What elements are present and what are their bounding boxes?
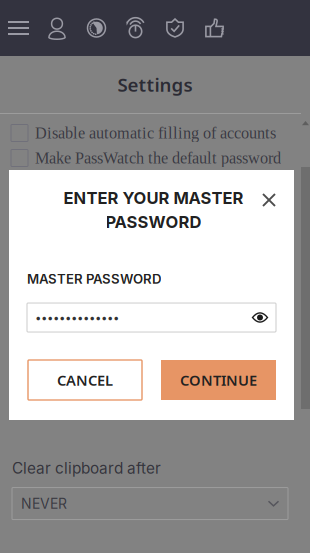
staticText: Clear clipboard after xyxy=(12,459,161,478)
button[interactable]: Security xyxy=(155,0,195,56)
staticText: CONTINUE xyxy=(180,370,257,390)
button[interactable]: Menu xyxy=(0,0,37,56)
staticText: PASSWORD xyxy=(105,212,201,232)
staticText: CANCEL xyxy=(57,370,113,390)
staticText: ENTER YOUR MASTER xyxy=(63,188,243,208)
staticText: MASTER PASSWORD xyxy=(27,271,162,287)
button[interactable]: Password strength xyxy=(77,0,116,56)
staticText: Make PassWatch the default password xyxy=(35,149,281,167)
staticText: •••••••••••••• xyxy=(35,311,119,324)
button[interactable]: CANCEL xyxy=(28,360,142,400)
button[interactable]: CONTINUE xyxy=(161,360,276,400)
staticText: NEVER xyxy=(21,495,67,512)
staticText: Settings xyxy=(117,72,192,97)
button[interactable]: Account xyxy=(37,0,77,56)
button[interactable]: Close xyxy=(255,186,283,214)
button[interactable]: Generator xyxy=(116,0,155,56)
staticText: Disable automatic filling of accounts xyxy=(35,124,276,142)
button[interactable]: Feedback xyxy=(195,0,235,56)
